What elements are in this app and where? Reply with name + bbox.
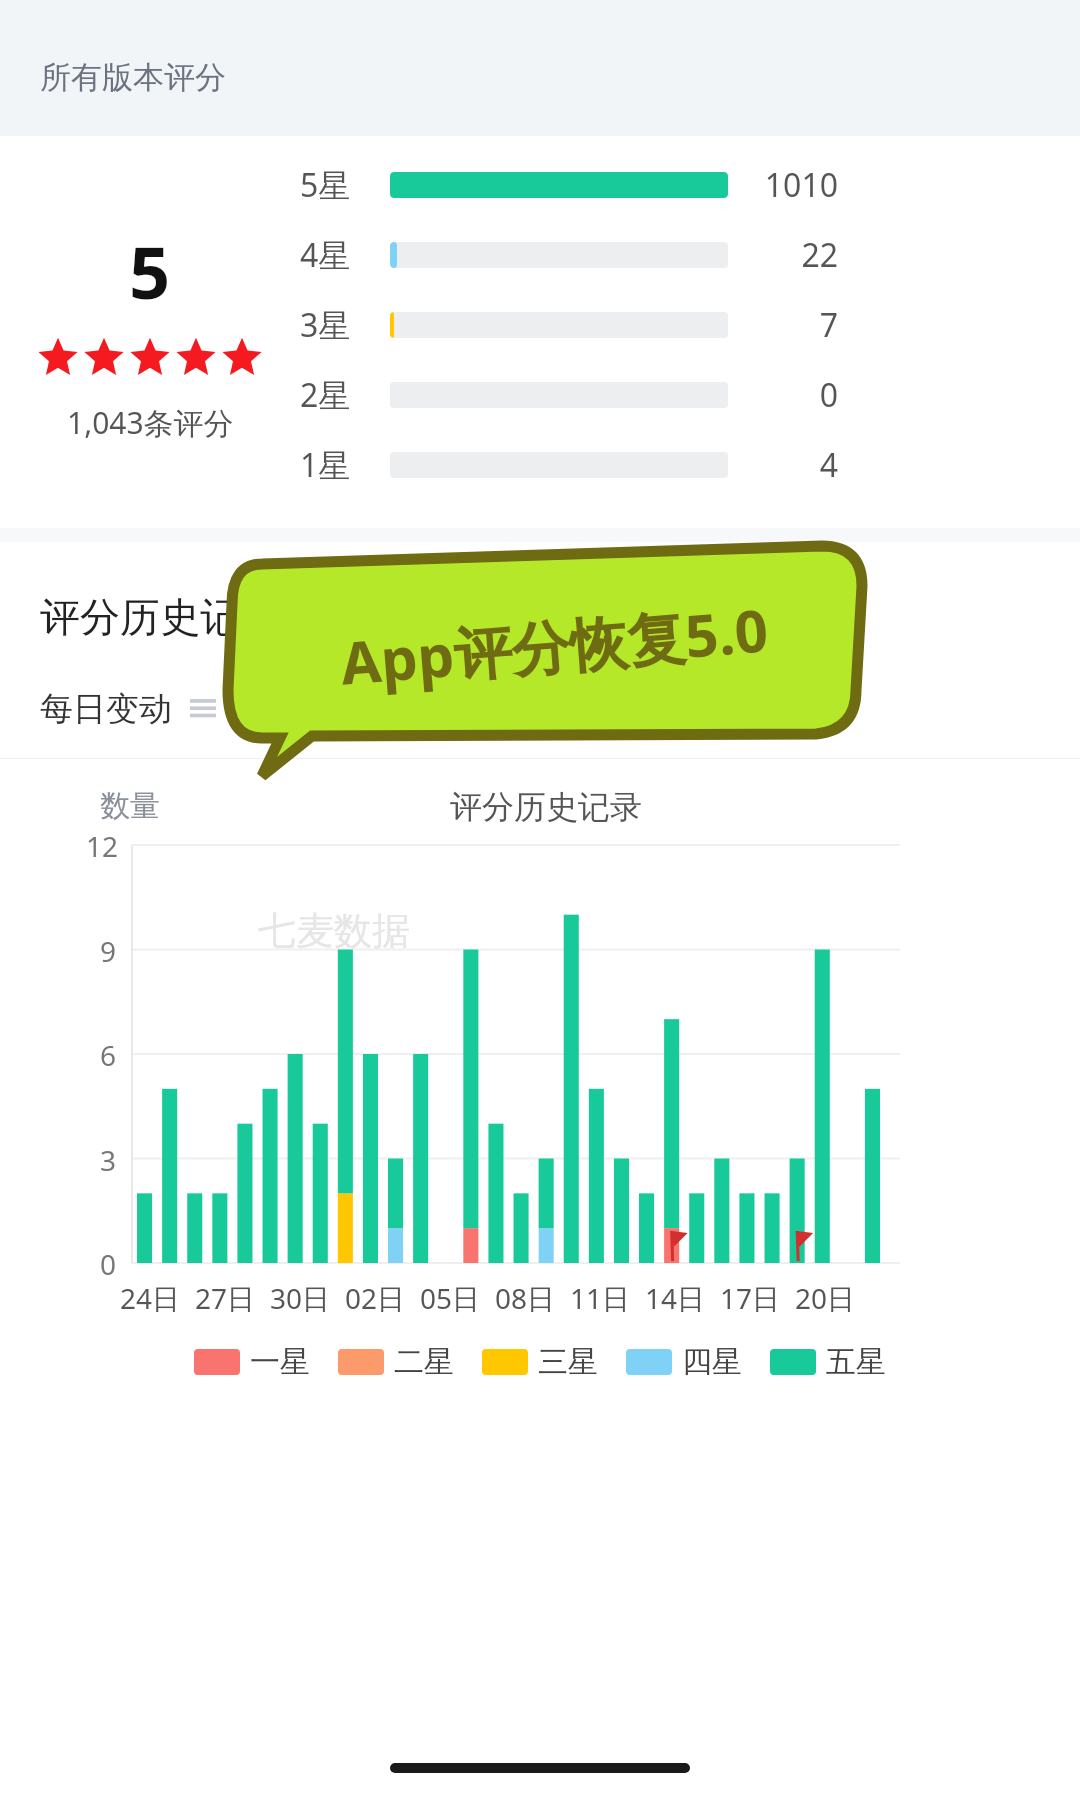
staticText: 一星 [250,1343,310,1381]
staticText: 1星 [300,443,390,487]
staticText: 20日 [795,1279,856,1317]
staticText: 五星 [826,1343,886,1381]
staticText: 数量 [100,787,160,825]
staticText: 评分历史记录 [450,787,642,827]
button[interactable]: 1星 [300,430,840,500]
button[interactable]: 5星 [300,150,840,220]
staticText: 4 [740,443,838,487]
staticText: 所有版本评分 [40,58,226,97]
button[interactable]: 2星 [300,360,840,430]
staticText: 5星 [300,163,390,207]
staticText: 27日 [195,1279,256,1317]
staticText: 02日 [345,1279,406,1317]
staticText: 每日变动 [40,688,172,730]
staticText: 1,043条评分 [67,402,234,443]
staticText: 12 [86,827,119,865]
staticText: 4星 [300,233,390,277]
other: 筛选 [190,696,216,722]
button[interactable]: 每日变动 [40,688,216,730]
staticText: 1010 [740,163,838,207]
staticText: App评分恢复5.0 [338,589,771,702]
staticText: 0 [740,373,838,417]
staticText: 14日 [645,1279,706,1317]
button[interactable]: 4星 [300,220,840,290]
button[interactable]: 3星 [300,290,840,360]
staticText: 17日 [720,1279,781,1317]
staticText: 2星 [300,373,390,417]
staticText: 0 [100,1245,117,1283]
staticText: 30日 [270,1279,331,1317]
button[interactable]: 五星 [770,1343,886,1381]
staticText: 7 [740,303,838,347]
staticText: 3星 [300,303,390,347]
button[interactable]: 二星 [338,1343,454,1381]
staticText: 22 [740,233,838,277]
button[interactable]: 三星 [482,1343,598,1381]
staticText: 08日 [495,1279,556,1317]
staticText: 四星 [682,1343,742,1381]
staticText: 三星 [538,1343,598,1381]
staticText: 5 [129,222,171,320]
staticText: 6 [100,1036,117,1074]
staticText: 七麦数据 [258,907,410,955]
staticText: 05日 [420,1279,481,1317]
staticText: 24日 [120,1279,181,1317]
staticText: 二星 [394,1343,454,1381]
staticText: 9 [100,932,117,970]
staticText: 3 [100,1141,117,1179]
staticText: 11日 [570,1279,631,1317]
staticText: 评分历史记录 [40,592,280,642]
button[interactable]: 四星 [626,1343,742,1381]
button[interactable]: 一星 [194,1343,310,1381]
